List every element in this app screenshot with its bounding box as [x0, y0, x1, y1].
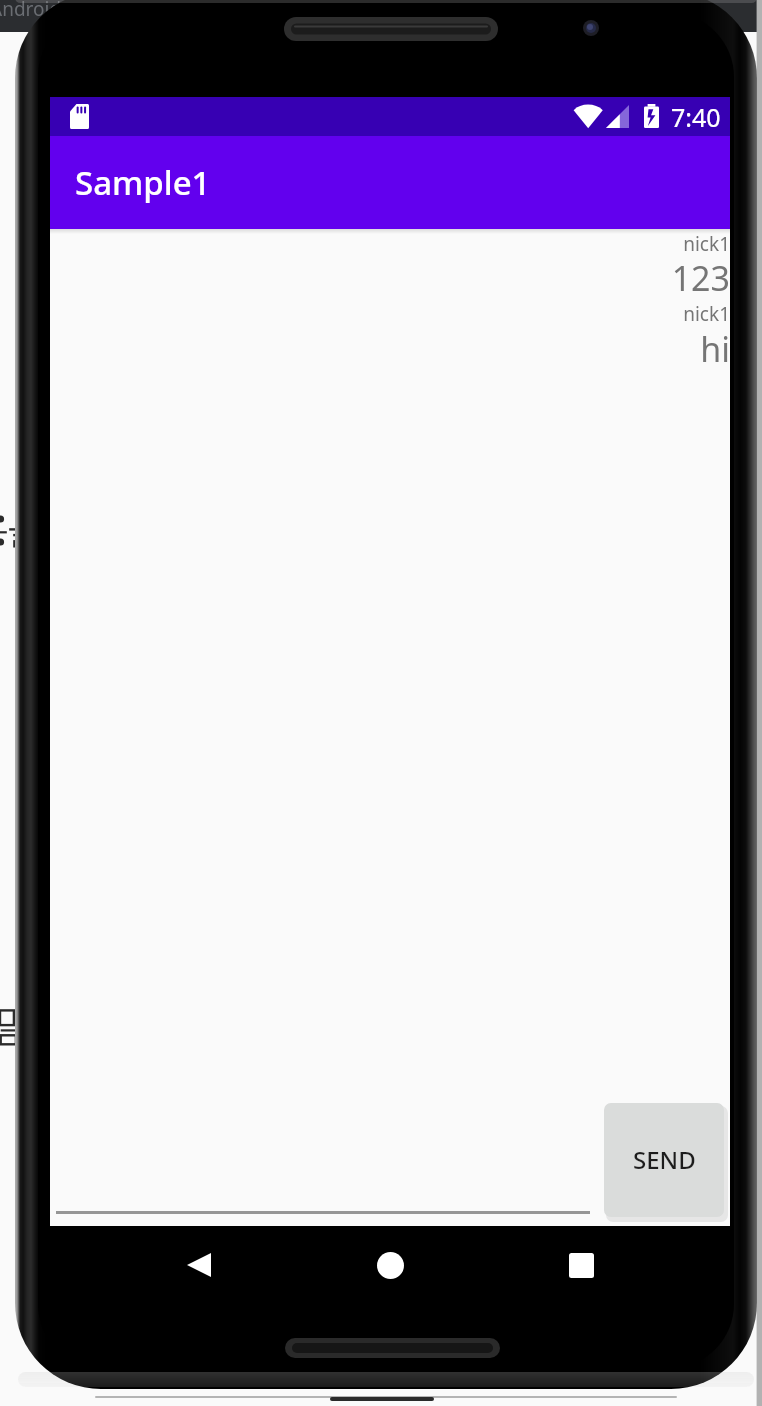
staticText: nick1: [50, 231, 730, 257]
button[interactable]: SEND: [604, 1103, 724, 1217]
button[interactable]: Sample1: [50, 136, 730, 229]
staticText: hi: [50, 326, 730, 372]
button[interactable]: [56, 1104, 590, 1214]
staticText: Android Emulator: [0, 0, 148, 22]
staticText: SEND: [633, 1143, 696, 1176]
staticText: nick1: [50, 301, 730, 327]
button[interactable]: Recents: [556, 1240, 606, 1290]
button[interactable]: Back: [174, 1240, 224, 1290]
staticText: 7:40: [671, 100, 721, 134]
staticText: Sample1: [75, 160, 211, 205]
button[interactable]: Home: [365, 1240, 415, 1290]
staticText: 123: [50, 255, 730, 301]
